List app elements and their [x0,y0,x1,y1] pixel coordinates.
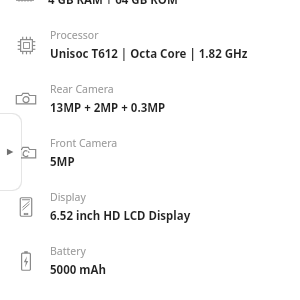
staticText: 5000 mAh [50,262,106,278]
other: Battery [15,250,37,272]
staticText: 5MP [50,154,75,170]
button[interactable]: Rear camera [0,82,300,116]
other: Front camera [15,142,37,164]
staticText: Front Camera [50,136,118,150]
button[interactable]: Processor [0,28,300,62]
other: Display [15,196,37,218]
staticText: 4 GB RAM | 64 GB ROM [48,0,178,4]
staticText: 6.52 inch HD LCD Display [50,208,191,224]
other: Processor [16,35,37,56]
staticText: Unisoc T612 | Octa Core | 1.82 GHz [50,46,248,62]
button[interactable]: Front camera [0,136,300,170]
other: Memory [15,0,35,4]
staticText: 13MP + 2MP + 0.3MP [50,100,166,116]
staticText: Processor [50,28,99,42]
button[interactable]: Open navigation drawer [0,113,22,191]
staticText: Display [50,190,86,204]
button[interactable]: Battery [0,244,300,278]
staticText: Rear Camera [50,82,114,96]
staticText: Battery [50,244,86,258]
other: Rear camera [15,88,37,110]
button[interactable]: Memory [0,0,300,12]
button[interactable]: Display [0,190,300,224]
